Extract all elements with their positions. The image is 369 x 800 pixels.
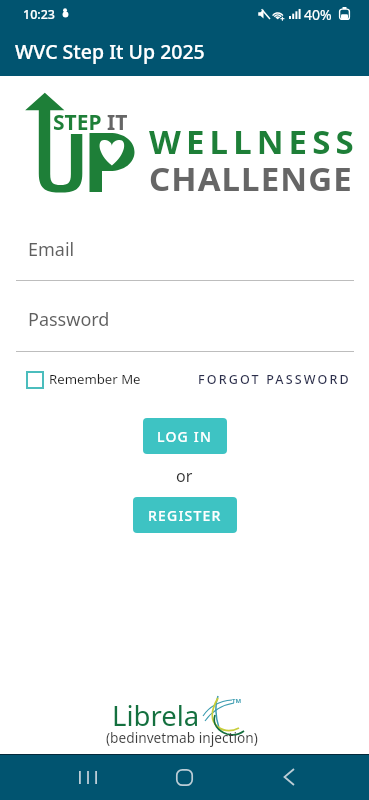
staticText: Librela	[112, 697, 200, 734]
staticText: WVC Step It Up 2025	[15, 38, 205, 65]
staticText: IT	[107, 108, 128, 137]
staticText: Email	[28, 237, 75, 262]
button[interactable]: Remember Me	[26, 367, 141, 391]
button[interactable]: Back	[259, 754, 319, 800]
staticText: FORGOT PASSWORD	[198, 371, 351, 388]
button[interactable]: FORGOT PASSWORD	[198, 367, 351, 391]
staticText: or	[176, 465, 193, 487]
staticText: Password	[28, 307, 110, 332]
button[interactable]: Home	[154, 754, 214, 800]
staticText: CHALLENGE	[149, 156, 353, 201]
button[interactable]: Password	[16, 293, 354, 352]
staticText: STEP	[53, 108, 102, 137]
staticText: WELLNESS	[149, 119, 359, 164]
staticText: (bedinvetmab injection)	[106, 728, 258, 747]
staticText: REGISTER	[148, 506, 222, 525]
button[interactable]: Email	[16, 223, 354, 281]
button[interactable]: Recent apps	[58, 754, 118, 800]
button[interactable]: LOG IN	[143, 418, 227, 454]
button[interactable]: REGISTER	[133, 497, 237, 533]
staticText: TM	[232, 697, 242, 705]
staticText: LOG IN	[157, 427, 213, 446]
staticText: 10:23	[23, 6, 56, 23]
staticText: Remember Me	[49, 370, 141, 388]
staticText: 40%	[304, 5, 332, 24]
